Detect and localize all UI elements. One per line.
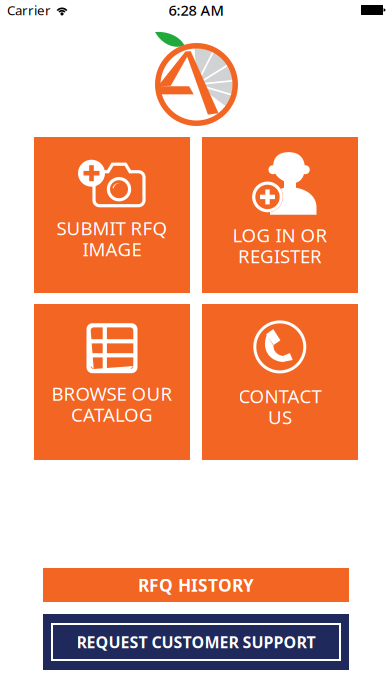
button[interactable]: REQUEST CUSTOMER SUPPORT: [43, 614, 349, 670]
staticText: Carrier: [7, 1, 51, 19]
staticText: RFQ HISTORY: [138, 573, 254, 596]
staticText: SUBMIT RFQ: [56, 216, 167, 240]
button[interactable]: BROWSE OUR: [34, 304, 190, 460]
staticText: REQUEST CUSTOMER SUPPORT: [76, 631, 315, 653]
staticText: CATALOG: [71, 402, 153, 427]
staticText: REGISTER: [238, 243, 322, 268]
staticText: CONTACT: [238, 384, 321, 408]
staticText: US: [268, 404, 292, 429]
staticText: LOG IN OR: [232, 223, 327, 247]
staticText: 6:28 AM: [168, 0, 223, 20]
staticText: BROWSE OUR: [51, 381, 172, 406]
button[interactable]: SUBMIT RFQ: [34, 137, 190, 293]
button[interactable]: RFQ HISTORY: [43, 568, 349, 602]
staticText: IMAGE: [82, 236, 141, 261]
button[interactable]: LOG IN OR: [202, 137, 358, 293]
button[interactable]: CONTACT: [202, 304, 358, 460]
